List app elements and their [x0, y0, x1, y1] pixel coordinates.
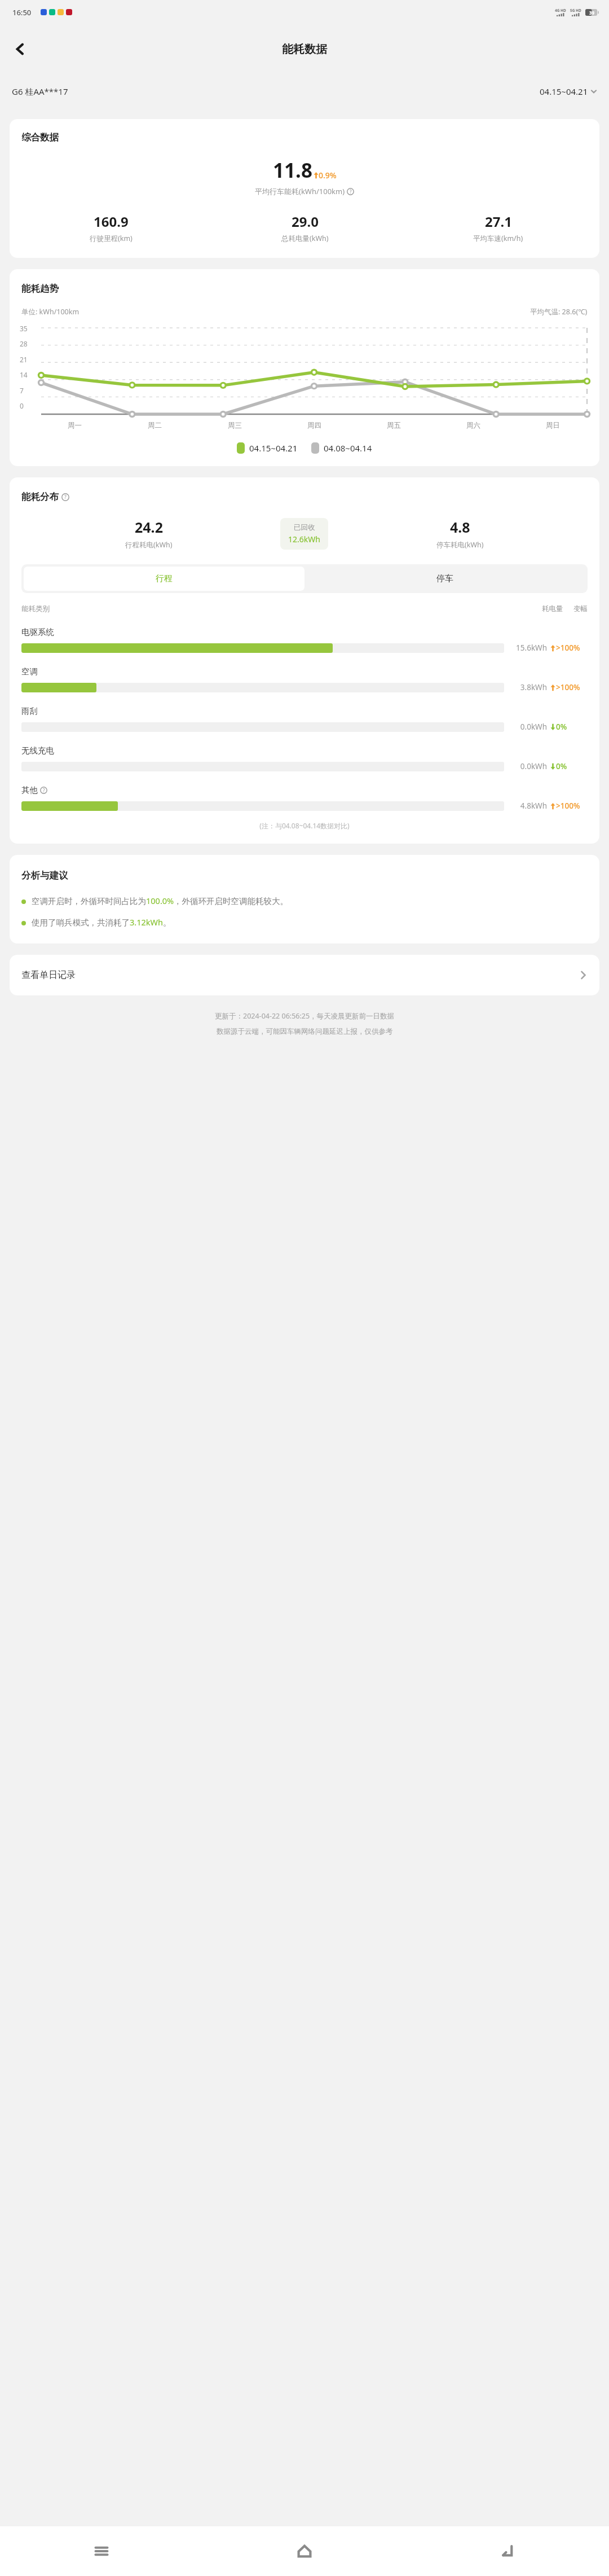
- staticText: 4.8kWh: [512, 801, 547, 811]
- staticText: (注：与04.08~04.14数据对比): [10, 821, 599, 830]
- button[interactable]: 行程: [24, 567, 304, 591]
- staticText: 单位: kWh/100km: [21, 307, 80, 317]
- staticText: 停车耗电(kWh): [436, 540, 484, 550]
- staticText: 耗电量: [542, 604, 563, 613]
- staticText: 11.8: [273, 157, 312, 184]
- staticText: 空调开启时，外循环时间占比为100.0%，外循环开启时空调能耗较大。: [32, 895, 289, 906]
- staticText: 已回收: [294, 523, 315, 532]
- staticText: 更新于：2024-04-22 06:56:25，每天凌晨更新前一日数据: [215, 1011, 395, 1021]
- staticText: 0%: [556, 722, 567, 732]
- staticText: 分析与建议: [21, 870, 68, 881]
- staticText: 总耗电量(kWh): [281, 234, 329, 243]
- staticText: 无线充电: [21, 745, 54, 756]
- staticText: 15.6kWh: [512, 643, 547, 653]
- staticText: 16:50: [12, 7, 32, 17]
- staticText: 3.8kWh: [512, 682, 547, 692]
- staticText: 0%: [556, 761, 567, 771]
- staticText: 周一: [68, 421, 82, 430]
- staticText: 周二: [148, 421, 162, 430]
- button[interactable]: Back: [406, 2526, 609, 2576]
- button[interactable]: 查看单日记录: [10, 955, 599, 995]
- staticText: 39: [589, 10, 595, 16]
- staticText: 12.6kWh: [288, 534, 320, 545]
- staticText: 综合数据: [21, 131, 59, 143]
- staticText: 能耗分布: [21, 491, 59, 503]
- staticText: 平均行车能耗(kWh/100km): [255, 186, 345, 196]
- staticText: 能耗类别: [21, 604, 50, 613]
- staticText: 查看单日记录: [21, 969, 76, 981]
- staticText: 空调: [21, 666, 38, 677]
- button[interactable]: Recents: [0, 2526, 203, 2576]
- staticText: 04.15~04.21: [540, 86, 588, 97]
- staticText: 数据源于云端，可能因车辆网络问题延迟上报，仅供参考: [217, 1027, 393, 1036]
- button[interactable]: 停车: [304, 567, 585, 591]
- staticText: 24.2: [135, 517, 163, 537]
- staticText: 28: [20, 339, 28, 348]
- staticText: G6 桂AA***17: [12, 86, 68, 97]
- staticText: 使用了哨兵模式，共消耗了3.12kWh。: [32, 916, 171, 928]
- staticText: 27.1: [485, 212, 512, 231]
- staticText: ?: [350, 188, 352, 195]
- staticText: 周五: [387, 421, 401, 430]
- staticText: 0.0kWh: [512, 722, 547, 732]
- staticText: 21: [20, 355, 28, 364]
- staticText: 其他: [21, 785, 38, 795]
- staticText: 周日: [546, 421, 560, 430]
- staticText: 4.8: [450, 517, 470, 537]
- staticText: 能耗趋势: [21, 283, 59, 295]
- staticText: 平均气温: 28.6(℃): [530, 307, 588, 317]
- staticText: 平均车速(km/h): [473, 234, 523, 243]
- staticText: 14: [20, 370, 28, 379]
- staticText: 0.9%: [319, 170, 337, 181]
- staticText: 行程耗电(kWh): [125, 540, 173, 550]
- staticText: 变幅: [573, 604, 588, 613]
- staticText: 35: [20, 324, 28, 333]
- staticText: 周三: [228, 421, 242, 430]
- staticText: ?: [43, 787, 45, 793]
- staticText: 160.9: [94, 212, 129, 231]
- staticText: 04.08~04.14: [324, 442, 372, 454]
- staticText: 行驶里程(km): [90, 234, 133, 243]
- staticText: 5G HD: [570, 8, 581, 13]
- staticText: 0.0kWh: [512, 761, 547, 771]
- staticText: 4G HD: [555, 8, 566, 13]
- staticText: 0: [20, 401, 24, 410]
- staticText: 雨刮: [21, 706, 38, 716]
- button[interactable]: 04.15~04.21: [540, 86, 597, 97]
- staticText: >100%: [556, 682, 580, 692]
- staticText: 停车: [436, 573, 453, 584]
- staticText: >100%: [556, 801, 580, 811]
- staticText: 电驱系统: [21, 627, 54, 637]
- staticText: 04.15~04.21: [249, 442, 298, 454]
- staticText: 29.0: [292, 212, 319, 231]
- staticText: 7: [20, 386, 24, 395]
- staticText: 周四: [307, 421, 321, 430]
- staticText: 行程: [156, 573, 173, 584]
- button[interactable]: Back: [7, 36, 34, 63]
- staticText: ?: [64, 494, 67, 501]
- staticText: >100%: [556, 643, 580, 653]
- staticText: 周六: [466, 421, 480, 430]
- button[interactable]: Home: [203, 2526, 406, 2576]
- staticText: 能耗数据: [282, 42, 327, 56]
